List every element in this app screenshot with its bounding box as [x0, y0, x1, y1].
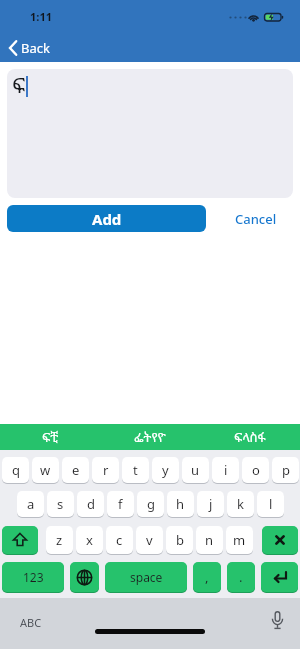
button[interactable]: t	[122, 457, 149, 483]
staticText: k	[237, 495, 244, 513]
button[interactable]: q	[2, 457, 29, 483]
button[interactable]: ፍላስፋ	[200, 424, 300, 450]
staticText: q	[12, 461, 20, 479]
staticText: j	[209, 495, 213, 513]
button[interactable]: .	[227, 562, 255, 592]
staticText: z	[56, 531, 63, 549]
staticText: ፍላስፋ	[234, 428, 266, 446]
button[interactable]: l	[257, 491, 284, 517]
button[interactable]	[261, 562, 298, 592]
staticText: e	[72, 461, 80, 479]
button[interactable]: space	[105, 562, 187, 592]
staticText: x	[86, 531, 93, 549]
staticText: 1:11	[30, 9, 52, 24]
button[interactable]: r	[92, 457, 119, 483]
button[interactable]: v	[136, 526, 163, 554]
button[interactable]: y	[152, 457, 179, 483]
button[interactable]: m	[226, 526, 253, 554]
staticText: t	[133, 461, 138, 479]
button[interactable]: d	[77, 491, 104, 517]
button[interactable]: z	[46, 526, 73, 554]
button[interactable]: 123	[2, 562, 64, 592]
staticText: 123	[23, 569, 44, 585]
staticText: space	[130, 569, 163, 585]
button[interactable]: c	[106, 526, 133, 554]
staticText: p	[282, 461, 290, 479]
staticText: d	[87, 495, 95, 513]
button[interactable]: f	[107, 491, 134, 517]
button[interactable]: i	[212, 457, 239, 483]
button[interactable]: ,	[193, 562, 221, 592]
button[interactable]: Back	[8, 38, 50, 58]
staticText: m	[233, 531, 246, 549]
button[interactable]: k	[227, 491, 254, 517]
button[interactable]: p	[272, 457, 299, 483]
button[interactable]: n	[196, 526, 223, 554]
button[interactable]: s	[47, 491, 74, 517]
button[interactable]: j	[197, 491, 224, 517]
staticText: y	[162, 461, 169, 479]
button[interactable]: ABC	[7, 610, 55, 634]
button[interactable]: h	[167, 491, 194, 517]
staticText: .	[239, 568, 243, 586]
staticText: a	[27, 495, 35, 513]
staticText: Cancel	[235, 210, 277, 228]
button[interactable]: g	[137, 491, 164, 517]
button[interactable]	[264, 608, 290, 634]
button[interactable]: Add	[7, 205, 206, 232]
staticText: l	[269, 495, 273, 513]
staticText: Add	[92, 209, 122, 229]
staticText: s	[57, 495, 64, 513]
button[interactable]: w	[32, 457, 59, 483]
staticText: h	[176, 495, 185, 513]
staticText: Back	[21, 39, 50, 57]
button[interactable]	[70, 562, 99, 592]
button[interactable]: u	[182, 457, 209, 483]
staticText: r	[103, 461, 109, 479]
staticText: g	[147, 495, 155, 513]
staticText: o	[252, 461, 260, 479]
button[interactable]: o	[242, 457, 269, 483]
staticText: n	[205, 531, 214, 549]
staticText: w	[40, 461, 51, 479]
staticText: ፍቺ	[42, 428, 59, 446]
staticText: c	[116, 531, 123, 549]
staticText: i	[224, 461, 228, 479]
button[interactable]: e	[62, 457, 89, 483]
button[interactable]: b	[166, 526, 193, 554]
button[interactable]	[262, 526, 298, 554]
button[interactable]: ፍቺ	[0, 424, 100, 450]
button[interactable]: ፌትየዮ	[100, 424, 200, 450]
staticText: f	[118, 495, 123, 513]
button[interactable]: Cancel	[226, 205, 286, 232]
staticText: ABC	[20, 615, 42, 630]
button[interactable]: a	[17, 491, 44, 517]
button[interactable]	[2, 526, 38, 554]
staticText: ,	[205, 568, 209, 586]
staticText: b	[176, 531, 184, 549]
button[interactable]: x	[76, 526, 103, 554]
staticText: ፌትየዮ	[134, 428, 166, 446]
staticText: v	[146, 531, 153, 549]
staticText: u	[191, 461, 200, 479]
staticText: ፍ	[12, 71, 26, 100]
